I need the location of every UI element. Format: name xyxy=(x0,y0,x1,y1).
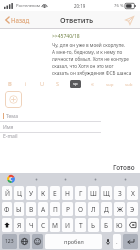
button[interactable]: Ь xyxy=(88,218,99,232)
staticText: У xyxy=(29,189,34,198)
staticText: E-mail xyxy=(3,133,18,140)
button[interactable]: Тема xyxy=(3,111,99,121)
staticText: А мне-то, бедному, и к нему по xyxy=(52,49,123,55)
staticText: В xyxy=(29,205,34,214)
staticText: О xyxy=(78,205,84,214)
button[interactable]: Добавить файл xyxy=(5,91,22,108)
button[interactable]: Б xyxy=(101,218,112,232)
button[interactable]: 123 xyxy=(2,234,17,249)
button[interactable]: К xyxy=(38,186,48,200)
button[interactable]: Я xyxy=(14,218,24,232)
staticText: Ц xyxy=(17,189,22,198)
button[interactable]: Х xyxy=(127,186,138,200)
button[interactable]: Подсказка 0 xyxy=(22,173,51,185)
button[interactable]: Р xyxy=(62,202,73,216)
button[interactable]: Shift xyxy=(2,218,12,232)
staticText: Е xyxy=(53,189,57,198)
button[interactable]: Подсказка 1 xyxy=(51,173,80,185)
staticText: Н xyxy=(65,189,70,198)
button[interactable]: i xyxy=(21,79,31,89)
staticText: . xyxy=(116,238,118,246)
staticText: Назад xyxy=(11,16,30,24)
button[interactable]: « xyxy=(87,79,97,89)
button[interactable]: Е xyxy=(50,186,60,200)
button[interactable]: Н xyxy=(62,186,73,200)
staticText: С xyxy=(41,221,46,230)
button[interactable]: Г xyxy=(75,186,86,200)
staticText: К xyxy=(41,189,46,198)
button[interactable]: U xyxy=(37,79,47,89)
staticText: М xyxy=(52,221,58,230)
button[interactable]: Ф xyxy=(2,202,12,216)
button[interactable]: А xyxy=(38,202,48,216)
button[interactable]: Ц xyxy=(14,186,24,200)
button[interactable]: Google xyxy=(0,173,22,185)
staticText: sub xyxy=(125,81,133,87)
button[interactable]: О xyxy=(75,202,86,216)
staticText: Имя xyxy=(3,124,14,131)
button[interactable]: пробел xyxy=(45,234,102,249)
button[interactable]: Удалить xyxy=(127,218,138,232)
button[interactable]: Готово xyxy=(108,161,140,173)
staticText: Я xyxy=(17,221,22,230)
button[interactable]: Ч xyxy=(26,218,36,232)
staticText: Т xyxy=(79,221,83,230)
staticText: Ответить xyxy=(60,15,94,25)
button[interactable]: Назад xyxy=(4,13,31,27)
button[interactable]: Отправить xyxy=(123,14,136,27)
button[interactable]: Имя xyxy=(3,122,99,132)
button[interactable]: Й xyxy=(2,186,12,200)
button[interactable]: sup xyxy=(103,79,116,89)
staticText: Г xyxy=(79,189,83,198)
button[interactable]: . xyxy=(113,234,121,249)
button[interactable]: Щ xyxy=(101,186,112,200)
button[interactable]: У xyxy=(26,186,36,200)
button[interactable]: Эмодзи xyxy=(32,234,43,249)
button[interactable]: Ы xyxy=(14,202,24,216)
button[interactable]: В xyxy=(26,202,36,216)
staticText: Э xyxy=(130,205,135,214)
staticText: Ь xyxy=(91,221,96,230)
staticText: личности обмыл. Хотя не контуре xyxy=(52,56,129,62)
button[interactable]: Э xyxy=(127,202,138,216)
staticText: 76 % xyxy=(114,3,124,9)
staticText: Й xyxy=(5,189,10,198)
button[interactable]: B xyxy=(5,79,15,89)
button[interactable]: З xyxy=(114,186,125,200)
button[interactable]: S xyxy=(53,79,63,89)
staticText: Ю xyxy=(116,221,123,230)
button[interactable]: Подсказка 2 xyxy=(80,173,110,185)
staticText: Тема xyxy=(6,113,18,120)
button[interactable]: Ш xyxy=(88,186,99,200)
staticText: сказал, что Хотя он это мог xyxy=(52,63,114,69)
staticText: Б xyxy=(104,221,109,230)
button[interactable]: М xyxy=(50,218,60,232)
button[interactable]: E-mail xyxy=(3,133,82,140)
staticText: пробел xyxy=(64,238,84,246)
staticText: S xyxy=(56,80,60,88)
staticText: Ростелеком xyxy=(16,3,40,9)
button[interactable]: И xyxy=(62,218,73,232)
button[interactable]: Микрофон xyxy=(104,234,111,249)
staticText: Р xyxy=(66,205,70,214)
button[interactable]: sub xyxy=(122,79,135,89)
staticText: U xyxy=(40,80,45,88)
button[interactable]: Спойлер xyxy=(70,80,81,88)
button[interactable]: Л xyxy=(88,202,99,216)
staticText: B xyxy=(8,80,12,88)
staticText: Ж xyxy=(117,205,123,214)
button[interactable]: С xyxy=(38,218,48,232)
button[interactable]: Ввод xyxy=(123,234,138,249)
button[interactable]: Т xyxy=(75,218,86,232)
button[interactable]: Язык xyxy=(19,234,30,249)
button[interactable]: Ю xyxy=(114,218,125,232)
staticText: Л xyxy=(91,205,96,214)
staticText: 20:19 xyxy=(74,3,86,9)
staticText: « xyxy=(91,80,94,88)
staticText: И xyxy=(65,221,70,230)
button[interactable]: Подсказка 3 xyxy=(110,173,140,185)
button[interactable]: Ж xyxy=(114,202,125,216)
staticText: сказать он зябуждения ФСБ шанса xyxy=(52,70,132,76)
button[interactable]: Д xyxy=(101,202,112,216)
button[interactable]: П xyxy=(50,202,60,216)
